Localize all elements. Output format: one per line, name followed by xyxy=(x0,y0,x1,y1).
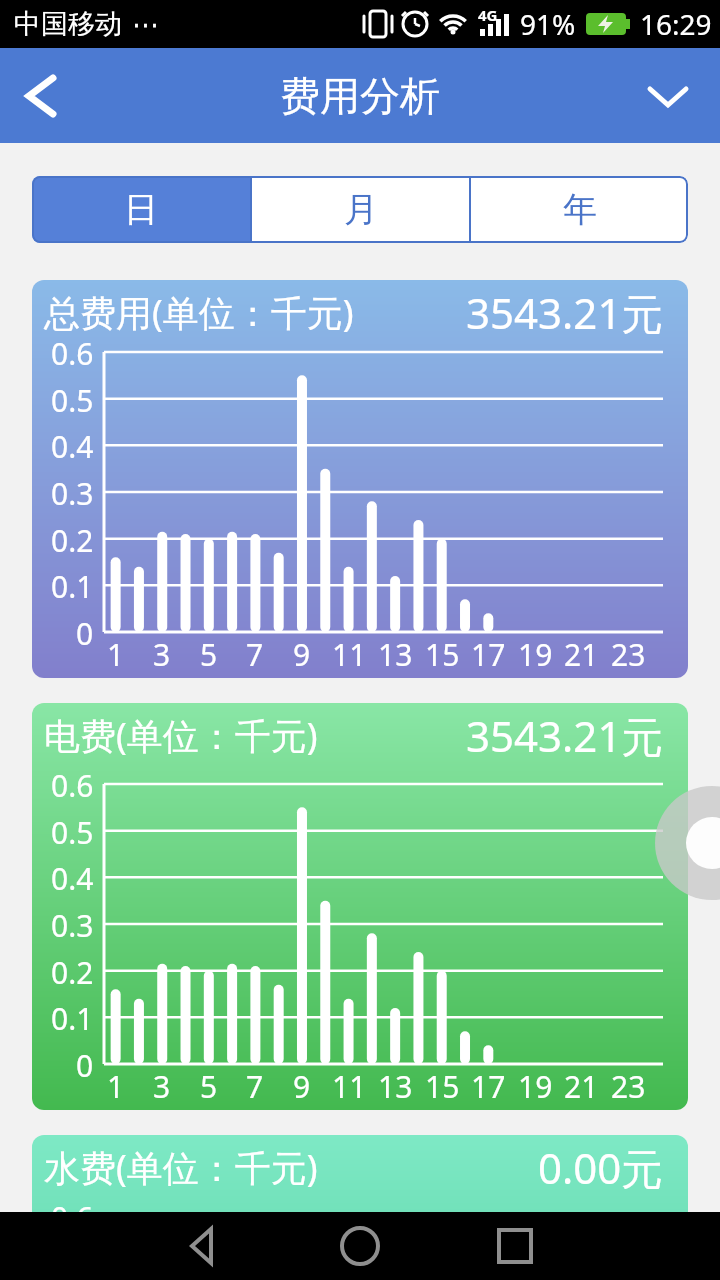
staticText: 年 xyxy=(563,188,597,231)
staticText: 13 xyxy=(378,1066,413,1107)
staticText: 0.6 xyxy=(51,333,94,374)
staticText: 19 xyxy=(518,634,553,675)
staticText: 总费用(单位：千元) xyxy=(44,288,354,337)
staticText: 17 xyxy=(471,1066,506,1107)
button[interactable]: 年 xyxy=(471,176,688,243)
staticText: 0.6 xyxy=(51,765,94,806)
staticText: 0.1 xyxy=(51,566,94,607)
staticText: 0.3 xyxy=(51,473,94,514)
staticText: 0.1 xyxy=(51,998,94,1039)
staticText: 0.4 xyxy=(51,426,94,467)
button[interactable]: 日 xyxy=(32,176,250,243)
staticText: 16:29 xyxy=(640,5,712,43)
button[interactable]: 月 xyxy=(252,176,469,243)
staticText: 月 xyxy=(344,188,378,231)
staticText: 中国移动 xyxy=(14,7,122,41)
staticText: 电费(单位：千元) xyxy=(44,711,318,760)
staticText: 7 xyxy=(246,1066,264,1107)
staticText: 5 xyxy=(200,1066,218,1107)
staticText: 91% xyxy=(520,5,576,43)
staticText: 11 xyxy=(332,634,367,675)
staticText: 0.3 xyxy=(51,905,94,946)
staticText: 0 xyxy=(76,1045,94,1086)
staticText: 13 xyxy=(378,634,413,675)
staticText: 0.4 xyxy=(51,858,94,899)
staticText: ⋯ xyxy=(132,9,159,40)
staticText: 3543.21元 xyxy=(466,707,664,764)
staticText: 15 xyxy=(425,634,460,675)
button[interactable] xyxy=(164,1212,236,1280)
staticText: 9 xyxy=(293,1066,311,1107)
staticText: 1 xyxy=(107,1066,125,1107)
staticText: 0.6 xyxy=(51,1197,94,1212)
button[interactable] xyxy=(655,786,720,900)
button[interactable] xyxy=(638,66,698,126)
staticText: 5 xyxy=(200,634,218,675)
staticText: 3543.21元 xyxy=(466,284,664,341)
staticText: 11 xyxy=(332,1066,367,1107)
staticText: 19 xyxy=(518,1066,553,1107)
staticText: 21 xyxy=(564,634,599,675)
staticText: 23 xyxy=(611,634,646,675)
staticText: 0.2 xyxy=(51,520,94,561)
button[interactable]: 总费用(单位：千元) xyxy=(32,280,688,678)
button[interactable]: 水费(单位：千元) xyxy=(32,1135,688,1212)
staticText: 23 xyxy=(611,1066,646,1107)
staticText: 水费(单位：千元) xyxy=(44,1143,318,1192)
staticText: 4G xyxy=(478,5,498,25)
staticText: 9 xyxy=(293,634,311,675)
staticText: 7 xyxy=(246,634,264,675)
staticText: 3 xyxy=(153,1066,171,1107)
staticText: 0.5 xyxy=(51,380,94,421)
staticText: 日 xyxy=(124,188,158,231)
staticText: 15 xyxy=(425,1066,460,1107)
staticText: 1 xyxy=(107,634,125,675)
button[interactable]: 电费(单位：千元) xyxy=(32,703,688,1110)
staticText: 0.5 xyxy=(51,812,94,853)
staticText: 0.2 xyxy=(51,952,94,993)
button[interactable] xyxy=(479,1212,551,1280)
staticText: 费用分析 xyxy=(280,71,440,121)
staticText: 17 xyxy=(471,634,506,675)
staticText: 21 xyxy=(564,1066,599,1107)
staticText: 0.00元 xyxy=(538,1139,664,1196)
staticText: 3 xyxy=(153,634,171,675)
staticText: 0 xyxy=(76,613,94,654)
button[interactable] xyxy=(324,1212,396,1280)
button[interactable] xyxy=(0,61,70,131)
